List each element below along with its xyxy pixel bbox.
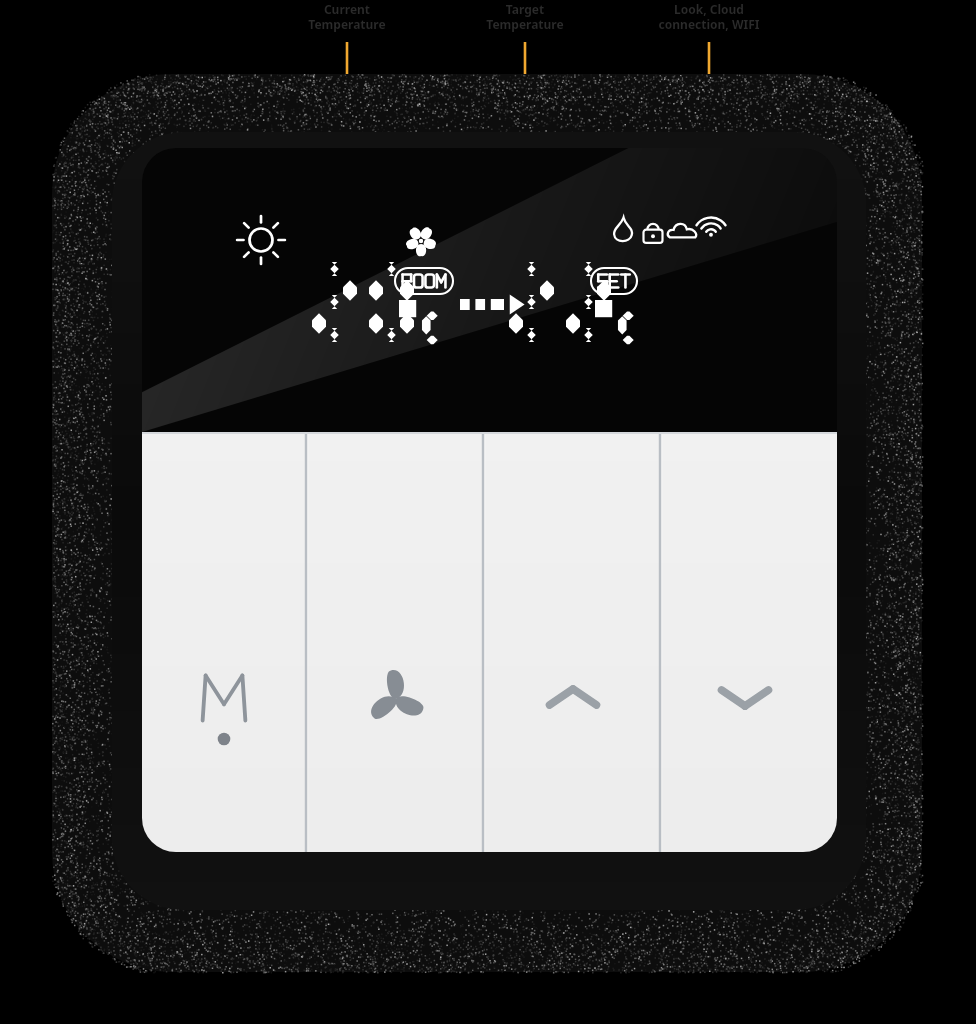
staticText: Target Temperature <box>455 1 595 32</box>
button[interactable]: Fan speed <box>306 432 483 852</box>
staticText: Look, Cloud connection, WIFI <box>639 1 779 32</box>
button[interactable]: Decrease temperature <box>660 432 837 852</box>
staticText: Current Temperature <box>277 1 417 32</box>
button[interactable]: Mode <box>142 432 306 852</box>
button[interactable]: Increase temperature <box>483 432 660 852</box>
